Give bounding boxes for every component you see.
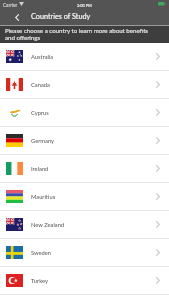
staticText: 2:00 PM (77, 3, 92, 8)
staticText: Please choose a country to learn more ab… (5, 27, 155, 41)
button[interactable]: Australia (0, 43, 169, 71)
button[interactable]: Germany (0, 127, 169, 155)
staticText: Germany (31, 137, 55, 144)
button[interactable]: Back (10, 10, 24, 24)
staticText: Sweden (31, 249, 52, 256)
staticText: Ireland (31, 165, 49, 172)
staticText: Australia (31, 53, 54, 60)
button[interactable]: Mauritius (0, 183, 169, 211)
button[interactable]: New Zealand (0, 211, 169, 239)
staticText: Turkey (31, 277, 48, 284)
staticText: New Zealand (31, 221, 65, 228)
staticText: Canada (31, 81, 50, 88)
staticText: Carrier (3, 2, 18, 8)
button[interactable]: Sweden (0, 239, 169, 267)
staticText: Mauritius (31, 193, 56, 200)
button[interactable]: Canada (0, 71, 169, 99)
button[interactable]: Cyprus (0, 99, 169, 127)
button[interactable]: Ireland (0, 155, 169, 183)
staticText: Countries of Study (31, 12, 91, 21)
staticText: Cyprus (31, 109, 49, 116)
button[interactable]: Turkey (0, 267, 169, 295)
